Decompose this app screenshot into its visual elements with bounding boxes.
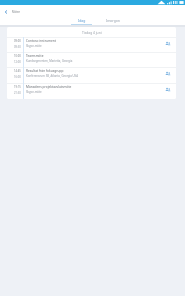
button[interactable]: Idag — [66, 17, 97, 25]
staticText: Möten — [12, 10, 21, 14]
button[interactable]: 09:00 — [7, 37, 176, 52]
staticText: Månadens projektavslutsmöte — [26, 85, 72, 89]
staticText: 19:15 — [14, 85, 21, 89]
staticText: 16:00 — [14, 75, 21, 79]
staticText: 09:00 — [14, 39, 21, 43]
staticText: 14:45 — [14, 69, 21, 73]
staticText: 12:00 — [14, 60, 21, 64]
button[interactable]: Attendees — [165, 41, 171, 47]
staticText: Tisdag 4 juni — [82, 30, 102, 34]
staticText: Idag — [78, 18, 86, 23]
staticText: Teamsmöte — [26, 54, 44, 58]
staticText: Skype-möte — [26, 90, 42, 94]
button[interactable]: Imorgon — [97, 17, 128, 25]
button[interactable]: 19:15 — [7, 83, 176, 99]
button[interactable]: 10:00 — [7, 52, 176, 67]
staticText: Kundsegmenten, Marietta, Georgia — [26, 59, 73, 63]
staticText: 09:30 — [14, 45, 21, 49]
staticText: Skype-möte — [26, 44, 42, 48]
staticText: Contoso instrument — [26, 39, 56, 43]
staticText: Imorgon — [106, 18, 120, 23]
button[interactable]: Attendees — [165, 71, 171, 77]
staticText: 21:30 — [14, 91, 21, 95]
staticText: 10:00 — [14, 54, 21, 58]
staticText: Resultat från fokusgrupp — [26, 69, 64, 73]
button[interactable]: Back — [0, 6, 12, 17]
staticText: Konferensrum 5B, Atlanta, Georgia USA — [26, 74, 78, 78]
button[interactable]: 14:45 — [7, 67, 176, 83]
button[interactable]: Attendees — [165, 87, 171, 93]
